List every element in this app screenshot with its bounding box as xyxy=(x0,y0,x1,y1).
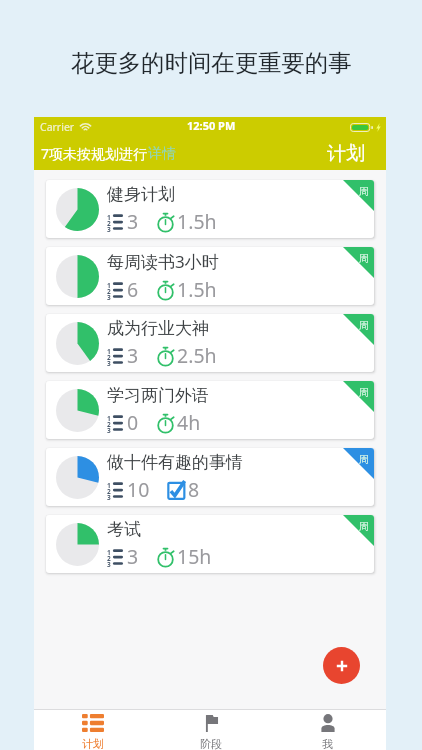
staticText: 7项未按规划进行 xyxy=(41,144,148,163)
staticText: 健身计划 xyxy=(107,184,175,205)
staticText: 2 xyxy=(107,287,111,296)
staticText: 3 xyxy=(127,208,139,235)
staticText: 周 xyxy=(359,520,369,533)
staticText: 周 xyxy=(359,319,369,332)
staticText: 1 xyxy=(107,414,111,423)
staticText: 3 xyxy=(107,293,111,302)
staticText: 2 xyxy=(107,554,111,563)
staticText: 阶段 xyxy=(200,737,222,750)
staticText: 2 xyxy=(107,353,111,362)
staticText: 考试 xyxy=(107,519,141,540)
staticText: 12:50 PM xyxy=(187,118,236,133)
staticText: 1.5h xyxy=(177,208,217,235)
staticText: 计划 xyxy=(82,737,104,750)
staticText: 15h xyxy=(177,543,212,570)
staticText: 0 xyxy=(127,409,139,436)
staticText: 1 xyxy=(107,213,111,222)
staticText: 3 xyxy=(127,543,139,570)
staticText: 周 xyxy=(359,386,369,399)
staticText: 做十件有趣的事情 xyxy=(107,452,243,473)
button[interactable]: 健身计划 xyxy=(46,180,374,238)
staticText: 8 xyxy=(188,476,200,503)
staticText: 1.5h xyxy=(177,276,217,303)
button[interactable]: 学习两门外语 xyxy=(46,381,374,439)
button[interactable]: 阶段 xyxy=(152,710,269,750)
button[interactable]: 做十件有趣的事情 xyxy=(46,448,374,506)
staticText: 详情 xyxy=(148,145,176,163)
staticText: 3 xyxy=(127,342,139,369)
staticText: 计划 xyxy=(327,142,365,166)
button[interactable]: 每周读书3小时 xyxy=(46,247,374,305)
staticText: 3 xyxy=(107,426,111,435)
staticText: 1 xyxy=(107,347,111,356)
staticText: 1 xyxy=(107,548,111,557)
button[interactable]: 7项未按规划进行 xyxy=(41,144,176,163)
staticText: 4h xyxy=(177,409,201,436)
staticText: 3 xyxy=(107,225,111,234)
staticText: 3 xyxy=(107,560,111,569)
staticText: 2 xyxy=(107,487,111,496)
staticText: 1 xyxy=(107,481,111,490)
staticText: 10 xyxy=(127,476,150,503)
staticText: 2.5h xyxy=(177,342,217,369)
staticText: 每周读书3小时 xyxy=(107,250,219,273)
button[interactable]: Add plan xyxy=(323,647,360,684)
staticText: 周 xyxy=(359,185,369,198)
staticText: 我 xyxy=(322,737,333,750)
staticText: 成为行业大神 xyxy=(107,318,209,339)
staticText: 3 xyxy=(107,359,111,368)
staticText: Carrier xyxy=(40,120,75,134)
staticText: 3 xyxy=(107,493,111,502)
staticText: 周 xyxy=(359,252,369,265)
staticText: 1 xyxy=(107,281,111,290)
button[interactable]: 成为行业大神 xyxy=(46,314,374,372)
staticText: 2 xyxy=(107,420,111,429)
staticText: 周 xyxy=(359,453,369,466)
staticText: 6 xyxy=(127,276,139,303)
button[interactable]: 考试 xyxy=(46,515,374,573)
staticText: 学习两门外语 xyxy=(107,385,209,406)
button[interactable]: 我 xyxy=(269,710,386,750)
button[interactable]: 计划 xyxy=(34,710,152,750)
staticText: 花更多的时间在更重要的事 xyxy=(71,48,352,77)
staticText: 2 xyxy=(107,219,111,228)
